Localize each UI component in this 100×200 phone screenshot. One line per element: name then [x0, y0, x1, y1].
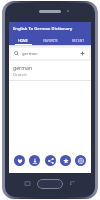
staticText: german	[13, 64, 33, 71]
staticText: Deutsch	[13, 72, 27, 77]
staticText: RECENT	[72, 39, 84, 43]
button[interactable]: More apps	[75, 155, 86, 166]
button[interactable]: Share	[45, 155, 56, 166]
staticText: german	[22, 51, 38, 57]
other: Recents	[24, 180, 31, 187]
button[interactable]: Download	[29, 155, 40, 166]
button[interactable]: RECENT	[64, 36, 91, 45]
button[interactable]: Favorite	[14, 155, 25, 166]
button[interactable]: Rate	[60, 155, 71, 166]
button[interactable]: Add word	[79, 50, 86, 57]
button[interactable]: HOME	[9, 36, 37, 45]
button[interactable]: german	[11, 48, 89, 59]
staticText: HOME	[18, 39, 28, 43]
other: Back	[69, 180, 76, 187]
button[interactable]: german	[9, 61, 91, 80]
button[interactable]: FAVORITE	[37, 36, 64, 45]
staticText: FAVORITE	[43, 39, 58, 43]
staticText: English To German Dictionary	[13, 26, 73, 32]
